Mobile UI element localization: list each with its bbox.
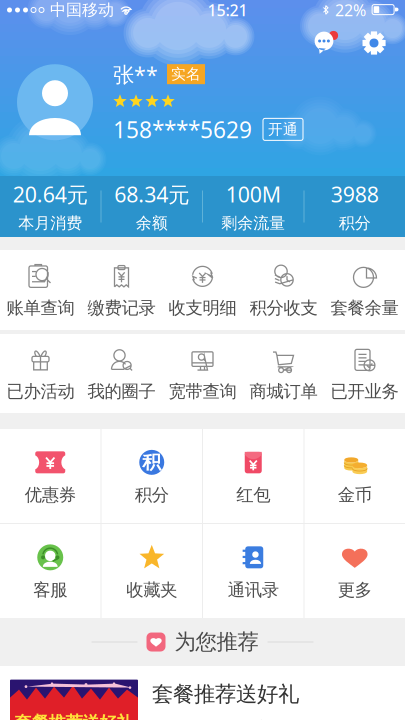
staticText: 100M bbox=[226, 180, 281, 208]
staticText: 3988 bbox=[331, 180, 379, 208]
staticText: 客服 bbox=[33, 579, 67, 601]
staticText: 收藏夹 bbox=[126, 579, 177, 601]
staticText: 积分 bbox=[135, 484, 169, 506]
staticText: 已开业务 bbox=[330, 381, 398, 402]
staticText: 本月消费 bbox=[18, 213, 82, 233]
staticText: 为您推荐 bbox=[174, 629, 258, 655]
staticText: 15:21 bbox=[207, 0, 247, 21]
button[interactable]: 商城订单 bbox=[243, 334, 324, 413]
button[interactable]: Messages bbox=[312, 30, 339, 56]
button[interactable]: Settings bbox=[361, 30, 387, 56]
staticText: 张** bbox=[113, 60, 158, 88]
button[interactable]: 已办活动 bbox=[0, 334, 81, 413]
staticText: 中国移动 bbox=[50, 0, 114, 20]
staticText: 宽带查询 bbox=[168, 381, 236, 402]
staticText: 68.34元 bbox=[114, 180, 189, 208]
staticText: 剩余流量 bbox=[221, 213, 285, 233]
staticText: 积分收支 bbox=[249, 297, 317, 319]
button[interactable]: 通讯录 bbox=[203, 524, 303, 618]
staticText: 缴费记录 bbox=[87, 297, 155, 319]
button[interactable]: 收藏夹 bbox=[101, 524, 202, 618]
button[interactable]: 100M bbox=[203, 176, 303, 236]
staticText: 优惠券 bbox=[25, 484, 76, 506]
button[interactable]: 账单查询 bbox=[0, 250, 81, 330]
staticText: 积 bbox=[142, 451, 161, 474]
staticText: 套餐推荐送好礼 bbox=[152, 681, 299, 707]
button[interactable]: 3988 bbox=[304, 176, 405, 236]
button[interactable]: 已开业务 bbox=[324, 334, 405, 413]
staticText: 套餐余量 bbox=[330, 297, 398, 319]
staticText: 商城订单 bbox=[249, 381, 317, 402]
button[interactable]: 套餐余量 bbox=[324, 250, 405, 330]
staticText: 收支明细 bbox=[168, 297, 236, 319]
staticText: 通讯录 bbox=[228, 579, 279, 601]
staticText: 账单查询 bbox=[6, 297, 74, 319]
staticText: 158****5629 bbox=[113, 114, 252, 144]
staticText: 20.64元 bbox=[13, 180, 88, 208]
button[interactable]: 积分收支 bbox=[243, 250, 324, 330]
button[interactable]: 红包 bbox=[203, 429, 303, 523]
button[interactable]: 20.64元 bbox=[0, 176, 100, 236]
staticText: 22% bbox=[335, 0, 366, 21]
staticText: 积分 bbox=[339, 213, 371, 233]
button[interactable]: 优惠券 bbox=[0, 429, 100, 523]
button[interactable]: 更多 bbox=[304, 524, 405, 618]
staticText: 套餐推荐送好礼 bbox=[14, 712, 133, 720]
staticText: 我的圈子 bbox=[87, 381, 155, 402]
button[interactable]: 收支明细 bbox=[162, 250, 243, 330]
button[interactable]: 缴费记录 bbox=[81, 250, 162, 330]
button[interactable]: 金币 bbox=[304, 429, 405, 523]
staticText: 余额 bbox=[136, 213, 168, 233]
staticText: 实名 bbox=[171, 65, 201, 83]
button[interactable]: 套餐推荐送好礼 bbox=[0, 666, 405, 720]
button[interactable]: 我的圈子 bbox=[81, 334, 162, 413]
staticText: 更多 bbox=[338, 579, 372, 601]
button[interactable]: 客服 bbox=[0, 524, 100, 618]
staticText: 已办活动 bbox=[6, 381, 74, 402]
staticText: 红包 bbox=[236, 484, 270, 506]
button[interactable]: 68.34元 bbox=[101, 176, 202, 236]
button[interactable]: 积 bbox=[101, 429, 202, 523]
staticText: 开通 bbox=[268, 120, 298, 138]
button[interactable]: 宽带查询 bbox=[162, 334, 243, 413]
staticText: 金币 bbox=[338, 484, 372, 506]
